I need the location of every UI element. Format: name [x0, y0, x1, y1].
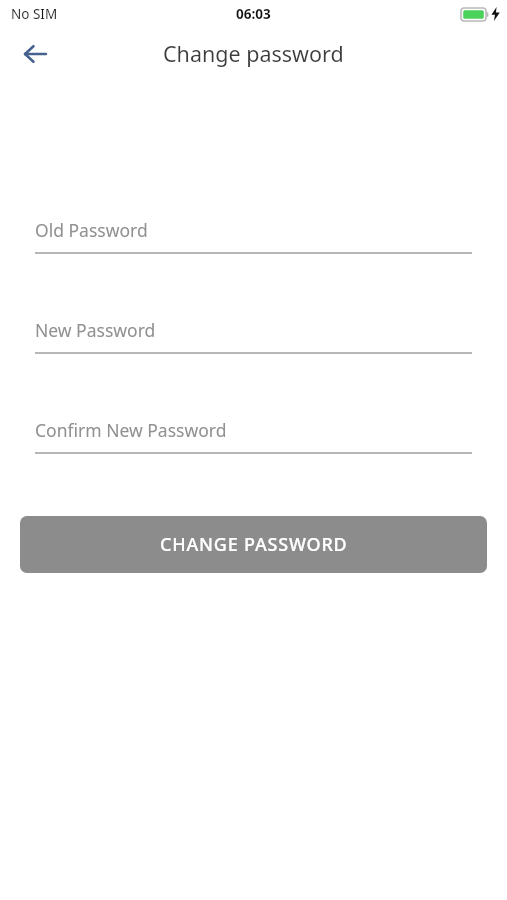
staticText: Confirm New Password: [35, 418, 227, 442]
staticText: New Password: [35, 318, 156, 342]
staticText: No SIM: [11, 5, 58, 23]
staticText: Old Password: [35, 218, 148, 242]
staticText: CHANGE PASSWORD: [160, 532, 348, 557]
button[interactable]: Back: [13, 32, 57, 76]
button[interactable]: New Password: [35, 318, 472, 354]
staticText: 06:03: [236, 5, 271, 23]
staticText: Change password: [163, 39, 344, 68]
button[interactable]: CHANGE PASSWORD: [20, 516, 487, 573]
button[interactable]: Old Password: [35, 218, 472, 254]
button[interactable]: Confirm New Password: [35, 418, 472, 454]
